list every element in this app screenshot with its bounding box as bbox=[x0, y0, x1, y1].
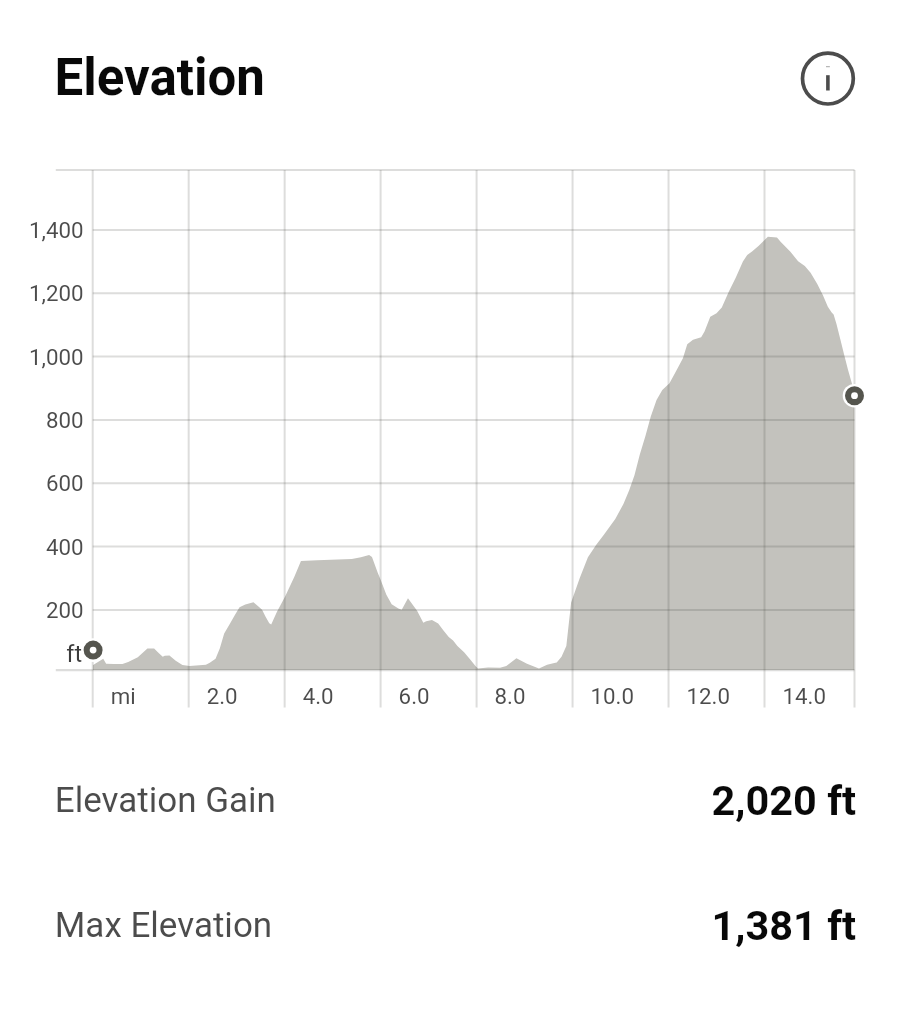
button[interactable]: Max Elevation 1,381 ft bbox=[40, 877, 871, 987]
button[interactable]: About elevation bbox=[787, 40, 867, 120]
button[interactable]: Elevation Gain 2,020 ft bbox=[40, 752, 871, 862]
